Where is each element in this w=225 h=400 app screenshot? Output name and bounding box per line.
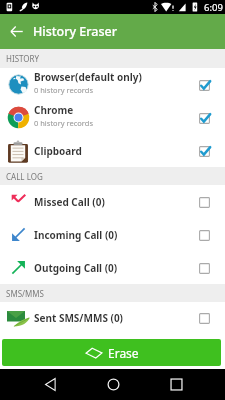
button[interactable]: Recents [156, 369, 196, 400]
staticText: Sent SMS/MMS (0) [34, 311, 123, 325]
staticText: Chrome [34, 103, 74, 117]
button[interactable]: Toggle [193, 307, 215, 329]
button[interactable]: Toggle [193, 107, 215, 129]
button[interactable]: Back [0, 14, 33, 49]
staticText: Clipboard [34, 144, 82, 158]
button[interactable]: Sent SMS/MMS (0) [0, 302, 225, 334]
staticText: 0 history records [34, 118, 93, 128]
button[interactable]: Toggle [193, 74, 215, 96]
staticText: HISTORY [6, 53, 40, 64]
button[interactable]: Outgoing Call (0) [0, 251, 225, 284]
button[interactable]: Chrome [0, 101, 225, 134]
staticText: 0 history records [34, 85, 93, 95]
staticText: Missed Call (0) [34, 195, 105, 209]
button[interactable]: Home [93, 369, 133, 400]
button[interactable]: Toggle [193, 257, 215, 279]
staticText: 6:09 [204, 1, 223, 14]
staticText: Erase [108, 345, 139, 361]
button[interactable]: Browser(default only) [0, 68, 225, 101]
button[interactable]: Erase [2, 339, 221, 366]
button[interactable]: Toggle [193, 224, 215, 246]
button[interactable]: Back [30, 369, 70, 400]
staticText: Outgoing Call (0) [34, 261, 118, 275]
staticText: Browser(default only) [34, 70, 142, 84]
button[interactable]: Incoming Call (0) [0, 218, 225, 251]
staticText: CALL LOG [6, 171, 43, 182]
staticText: History Eraser [33, 23, 118, 40]
button[interactable]: Missed Call (0) [0, 185, 225, 218]
button[interactable]: Toggle [193, 191, 215, 213]
button[interactable]: Clipboard [0, 134, 225, 167]
staticText: Incoming Call (0) [34, 228, 118, 242]
staticText: SMS/MMS [6, 288, 44, 299]
button[interactable]: Toggle [193, 140, 215, 162]
